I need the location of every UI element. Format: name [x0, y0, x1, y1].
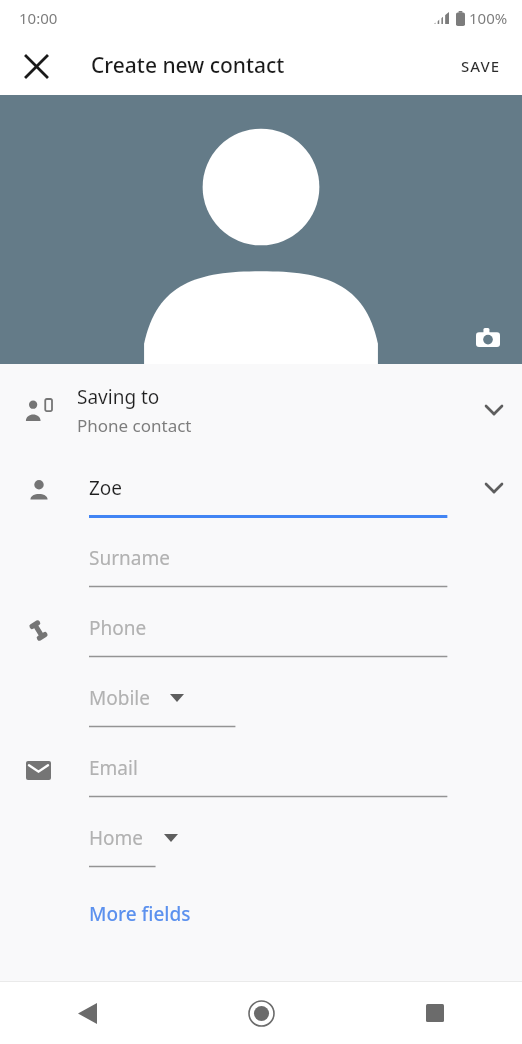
button[interactable]: Close — [11, 41, 61, 91]
staticText: 10:00 — [19, 8, 58, 28]
button[interactable]: Home — [0, 809, 522, 879]
staticText: Surname — [89, 545, 170, 571]
button[interactable]: Email — [0, 739, 522, 809]
staticText: Phone — [89, 615, 147, 641]
staticText: SAVE — [461, 56, 501, 76]
staticText: Mobile — [89, 685, 150, 711]
staticText: More fields — [89, 901, 191, 927]
button[interactable]: Mobile — [0, 669, 522, 739]
button[interactable]: Add contact photo — [0, 95, 522, 364]
staticText: Phone contact — [77, 414, 192, 437]
button[interactable]: Change photo — [469, 318, 507, 356]
button[interactable]: Home — [174, 982, 348, 1044]
button[interactable]: Recent apps — [348, 982, 522, 1044]
staticText: Home — [89, 825, 144, 851]
button[interactable]: Phone — [0, 599, 522, 669]
button[interactable]: Zoe — [0, 459, 522, 529]
button[interactable]: SAVE — [449, 42, 513, 90]
button[interactable]: More fields — [77, 893, 203, 935]
button[interactable]: Back — [0, 982, 174, 1044]
staticText: Create new contact — [91, 51, 285, 80]
staticText: Zoe — [89, 475, 123, 501]
button[interactable]: Saving to — [0, 375, 522, 445]
staticText: 100% — [469, 8, 508, 28]
staticText: Email — [89, 755, 138, 781]
staticText: Saving to — [77, 384, 160, 410]
button[interactable]: Surname — [0, 529, 522, 599]
